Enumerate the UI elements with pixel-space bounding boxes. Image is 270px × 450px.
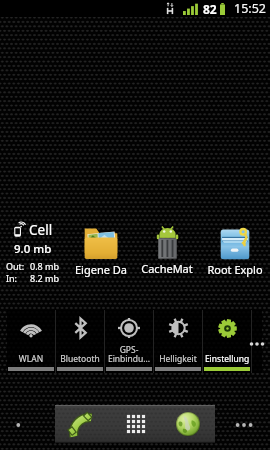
button[interactable]: WLAN	[7, 310, 55, 373]
staticText: Out:	[6, 260, 25, 272]
staticText: Einstellung	[203, 353, 251, 365]
button[interactable]: All apps	[120, 408, 152, 440]
staticText: Root Explo	[207, 262, 263, 277]
staticText: CacheMat	[141, 261, 193, 276]
staticText: In:	[6, 272, 18, 284]
button[interactable]: More toggles	[252, 310, 262, 373]
button[interactable]: Helligkeit	[154, 310, 202, 373]
button[interactable]: Browser	[172, 408, 204, 440]
staticText: GPS- Einbindu...	[105, 344, 153, 365]
button[interactable]: GPS- Einbindu...	[105, 310, 153, 373]
staticText: 15:52	[234, 0, 266, 17]
staticText: Helligkeit	[154, 353, 202, 365]
staticText: 8.2 mb	[30, 272, 59, 284]
button[interactable]: Einstellung	[203, 310, 251, 373]
staticText: 0.8 mb	[30, 260, 59, 272]
button[interactable]: Bluetooth	[56, 310, 104, 373]
button[interactable]: Phone	[64, 408, 96, 440]
staticText: Eigene Da	[75, 262, 127, 277]
button[interactable]: Cell	[0, 218, 66, 284]
button[interactable]: CacheMat	[134, 218, 200, 276]
staticText: 82	[203, 1, 217, 17]
staticText: WLAN	[7, 353, 55, 365]
button[interactable]: Eigene Da	[68, 218, 134, 277]
staticText: 9.0 mb	[14, 241, 52, 257]
staticText: Bluetooth	[56, 353, 104, 365]
staticText: Cell	[29, 221, 53, 239]
button[interactable]: Root Explo	[202, 218, 268, 277]
